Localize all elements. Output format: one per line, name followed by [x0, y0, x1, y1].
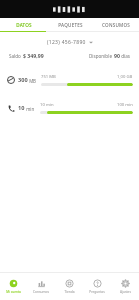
- button[interactable]: CONSUMOS: [93, 18, 139, 31]
- button[interactable]: PAQUETES: [47, 18, 93, 31]
- staticText: $ 349,99: [23, 52, 44, 59]
- button[interactable]: Consumos: [27, 273, 55, 300]
- staticText: (123) 456-7890: [47, 39, 86, 46]
- staticText: Tienda: [64, 290, 75, 294]
- other: Datos: [7, 76, 15, 84]
- staticText: DATOS: [16, 22, 32, 28]
- staticText: Ajustes: [120, 290, 131, 294]
- other: Logo: [53, 6, 87, 13]
- staticText: 10: [18, 104, 25, 112]
- staticText: 1,00 GB: [117, 74, 133, 80]
- button[interactable]: Preguntas: [83, 273, 111, 300]
- staticText: Preguntas: [89, 290, 105, 294]
- button[interactable]: Tienda: [55, 273, 83, 300]
- button[interactable]: (123) 456-7890: [43, 37, 97, 48]
- button[interactable]: Mi cuenta: [0, 273, 27, 300]
- button[interactable]: Minutos: [0, 98, 139, 118]
- button[interactable]: Datos: [0, 70, 139, 90]
- other: Minutos: [7, 104, 15, 112]
- button[interactable]: DATOS: [0, 18, 47, 31]
- staticText: min: [25, 106, 35, 112]
- staticText: CONSUMOS: [102, 22, 130, 28]
- staticText: Consumos: [33, 290, 49, 294]
- staticText: Saldo: [9, 53, 23, 59]
- staticText: Mi cuenta: [6, 290, 21, 294]
- staticText: 751 MB: [41, 74, 56, 80]
- staticText: 90: [114, 52, 120, 59]
- button[interactable]: Ajustes: [111, 273, 139, 300]
- staticText: 10 min: [40, 102, 54, 108]
- staticText: días: [120, 53, 130, 59]
- staticText: 300: [18, 76, 28, 84]
- staticText: 100 min: [117, 102, 133, 108]
- staticText: PAQUETES: [58, 22, 83, 28]
- staticText: Disponible: [89, 53, 114, 59]
- staticText: MB: [28, 78, 36, 84]
